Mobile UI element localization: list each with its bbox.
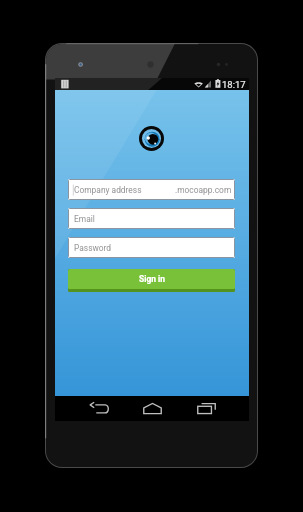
- staticText: Sign in: [139, 274, 165, 284]
- staticText: .mocoapp.com: [175, 185, 232, 195]
- button[interactable]: Email: [68, 208, 235, 229]
- staticText: Email: [74, 214, 95, 224]
- button[interactable]: Back: [79, 396, 119, 421]
- button[interactable]: Sign in: [68, 269, 235, 292]
- button[interactable]: Home: [132, 396, 172, 421]
- staticText: Password: [74, 243, 112, 253]
- staticText: 18:17: [222, 79, 246, 90]
- staticText: Company address: [74, 185, 142, 195]
- button[interactable]: Company address: [68, 179, 235, 200]
- button[interactable]: Recents: [186, 396, 226, 421]
- button[interactable]: Password: [68, 237, 235, 258]
